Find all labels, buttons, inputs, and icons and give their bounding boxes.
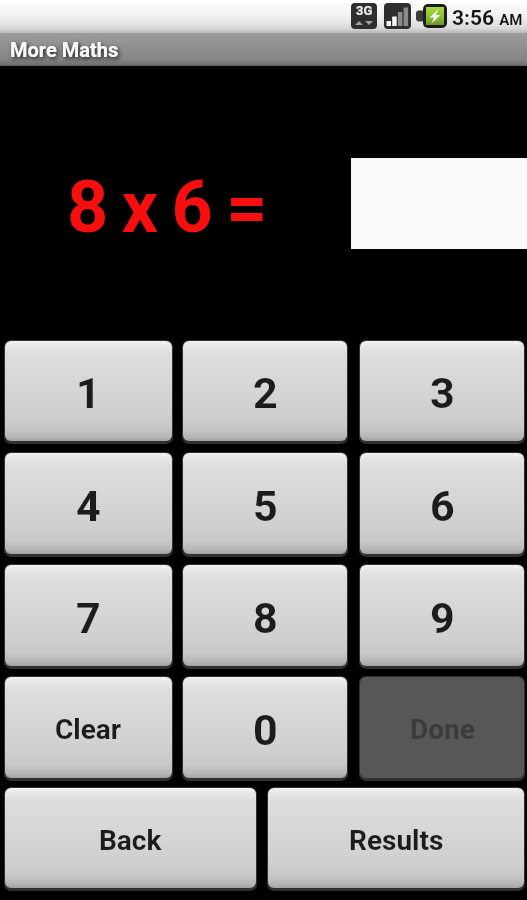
button[interactable]: Done (360, 677, 524, 778)
staticText: Back (99, 824, 162, 857)
staticText: 8 (253, 593, 278, 643)
staticText: Done (410, 713, 475, 746)
staticText: 0 (253, 705, 278, 755)
staticText: 2 (253, 368, 278, 418)
button[interactable]: 5 (183, 453, 347, 554)
button[interactable]: Results (268, 788, 524, 888)
staticText: 3:56 AM (452, 6, 523, 31)
button[interactable]: 2 (183, 341, 347, 441)
staticText: 4 (76, 481, 101, 531)
button[interactable]: 1 (5, 341, 172, 441)
button[interactable]: 6 (360, 453, 524, 554)
staticText: 6 (430, 481, 455, 531)
staticText: 1 (76, 368, 101, 418)
button[interactable]: Back (5, 788, 256, 888)
staticText: Clear (55, 713, 122, 746)
staticText: 3G (356, 3, 373, 18)
staticText: 3 (430, 368, 455, 418)
staticText: 7 (76, 593, 101, 643)
staticText: 5 (253, 481, 278, 531)
staticText: 8 x 6 = (67, 165, 266, 249)
button[interactable]: 3 (360, 341, 524, 441)
button[interactable]: 0 (183, 677, 347, 778)
button[interactable]: 7 (5, 565, 172, 666)
button[interactable]: Clear (5, 677, 172, 778)
staticText: 9 (430, 593, 455, 643)
button[interactable]: 4 (5, 453, 172, 554)
staticText: Results (349, 824, 444, 857)
staticText: More Maths (10, 38, 119, 61)
button[interactable]: 8 (183, 565, 347, 666)
button[interactable]: 9 (360, 565, 524, 666)
